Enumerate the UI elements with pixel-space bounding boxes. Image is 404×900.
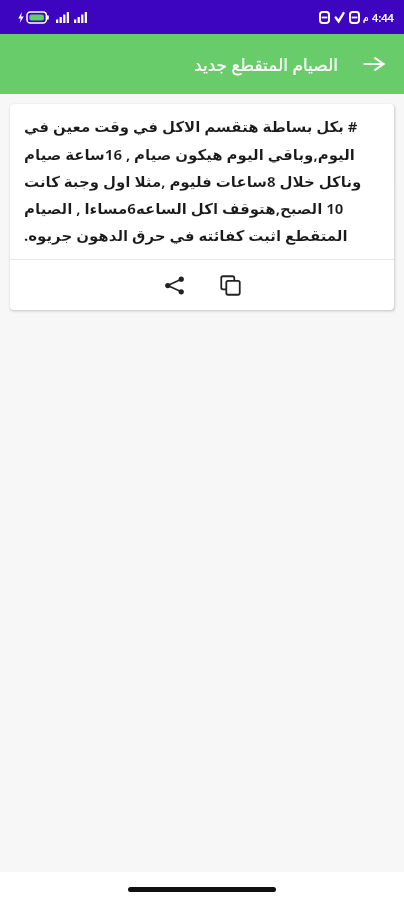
button[interactable]: Copy bbox=[208, 263, 252, 307]
staticText: # بكل بساطة هتقسم الاكل في وقت معين في ا… bbox=[24, 116, 380, 245]
staticText: م bbox=[363, 13, 369, 23]
staticText: 4:44 bbox=[372, 10, 394, 25]
button[interactable]: Back bbox=[352, 42, 396, 86]
button[interactable]: Share bbox=[152, 263, 196, 307]
staticText: الصيام المتقطع جديد bbox=[194, 53, 338, 76]
button[interactable]: # بكل بساطة هتقسم الاكل في وقت معين في ا… bbox=[10, 104, 394, 310]
